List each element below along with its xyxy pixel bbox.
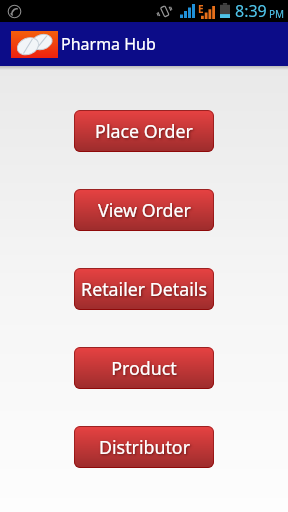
staticText: Place Order (95, 119, 193, 143)
button[interactable]: View Order (74, 189, 214, 231)
staticText: View Order (98, 198, 191, 222)
staticText: 8:39 (235, 0, 267, 22)
staticText: PM (269, 7, 285, 21)
button[interactable]: Distributor (74, 426, 214, 468)
button[interactable]: Retailer Details (74, 268, 214, 310)
button[interactable]: Place Order (74, 110, 214, 152)
staticText: E (198, 2, 204, 16)
staticText: Distributor (99, 435, 190, 459)
staticText: Pharma Hub (61, 33, 156, 55)
staticText: Retailer Details (81, 277, 207, 301)
other: Call (7, 4, 22, 19)
button[interactable]: Product (74, 347, 214, 389)
staticText: Product (111, 356, 177, 380)
